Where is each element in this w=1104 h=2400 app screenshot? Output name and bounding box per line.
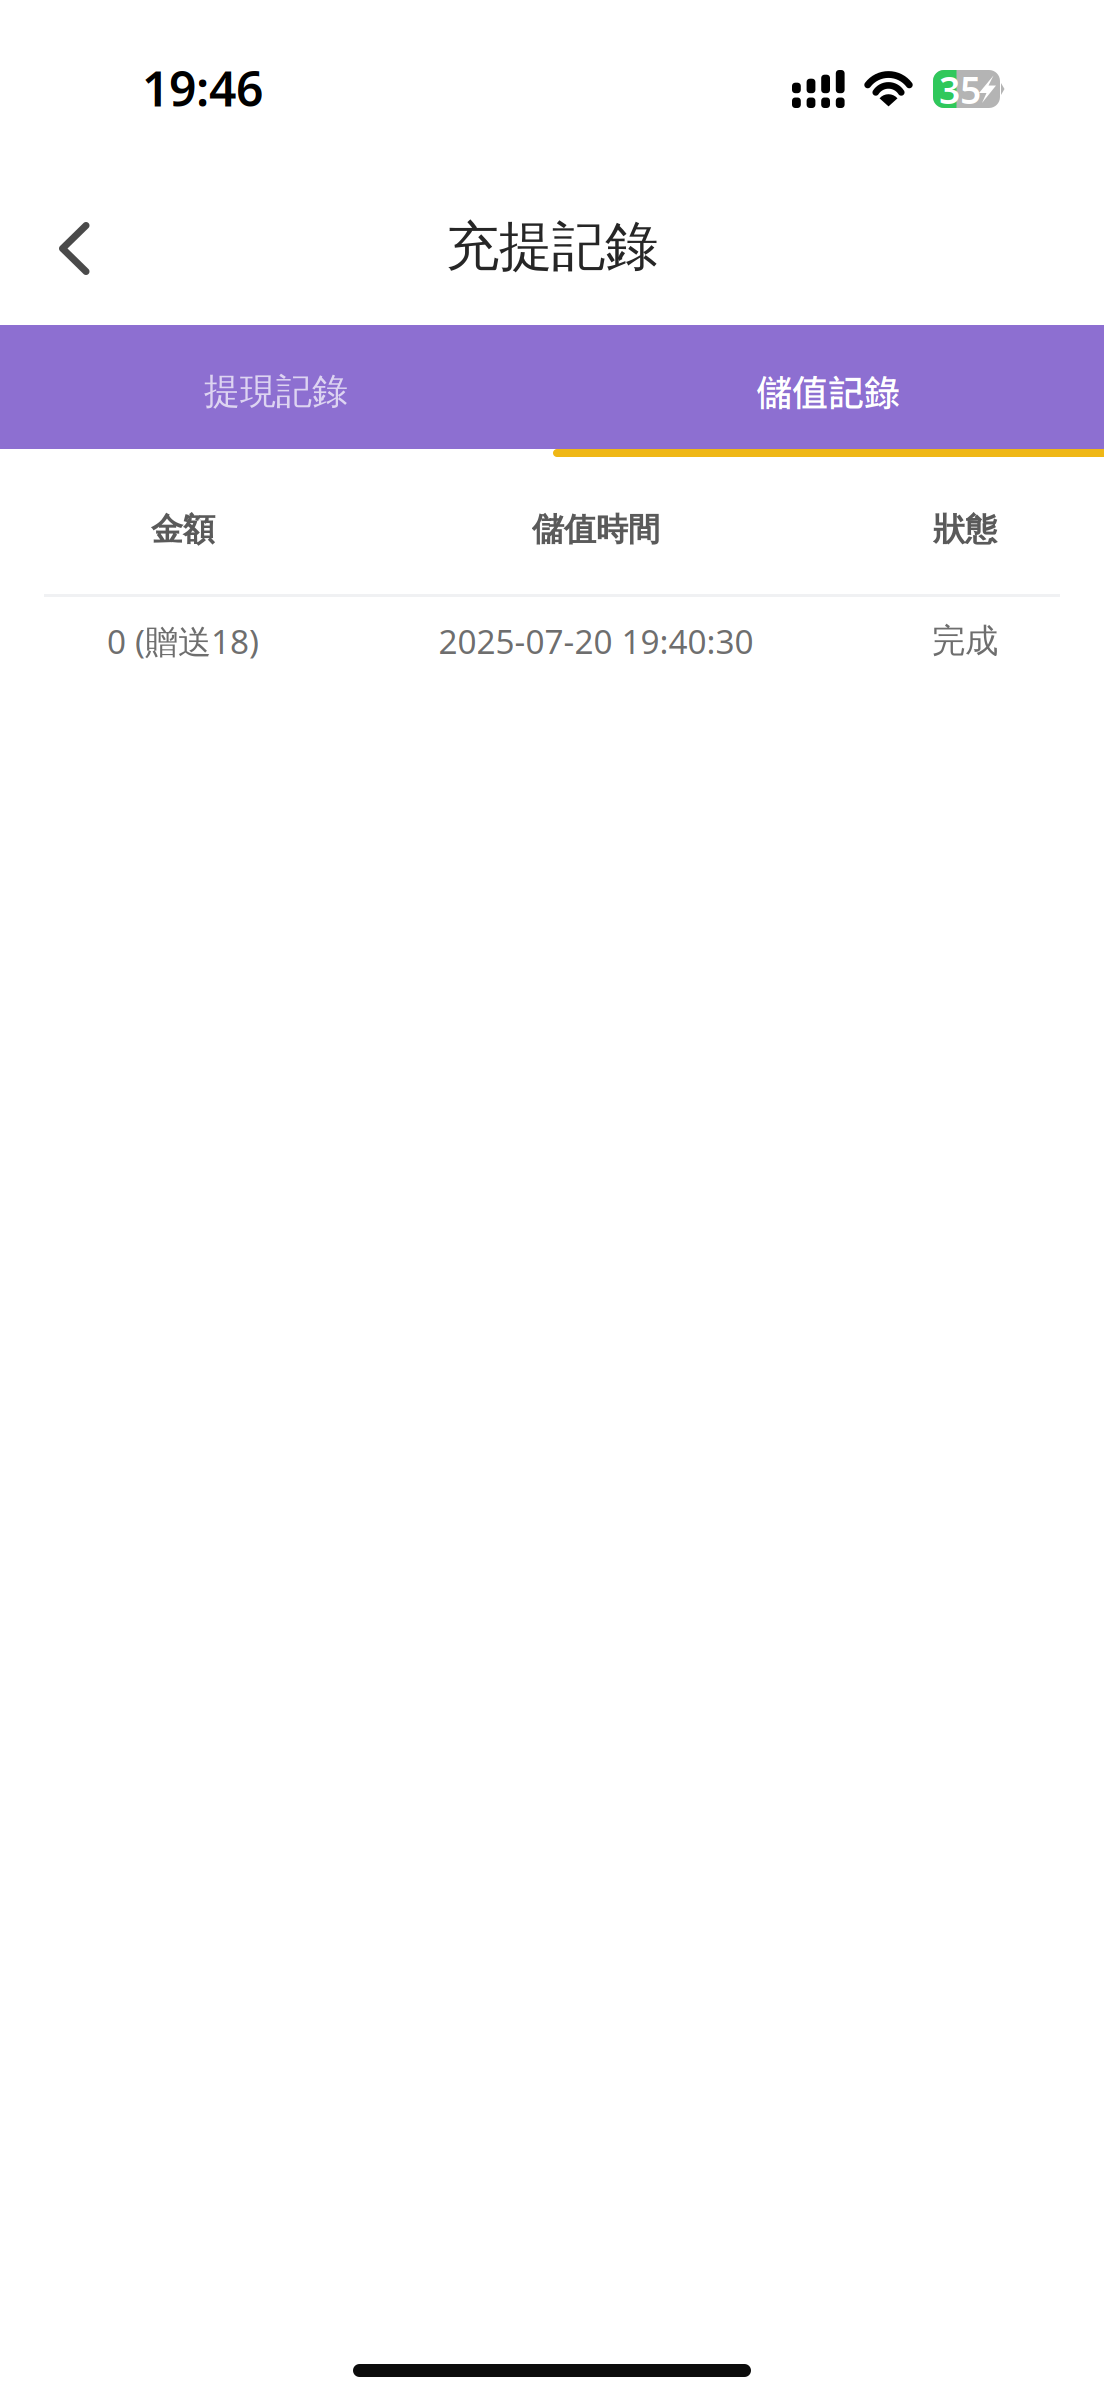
staticText: 儲值記錄 [756, 364, 900, 416]
button[interactable]: 提現記錄 [0, 325, 552, 449]
staticText: 狀態 [933, 510, 997, 549]
staticText: 金額 [151, 510, 215, 549]
staticText: 充提記錄 [446, 214, 658, 279]
button[interactable]: Back [0, 190, 140, 307]
staticText: 19:46 [142, 56, 263, 120]
staticText: 35 [939, 65, 981, 114]
button[interactable]: 儲值記錄 [552, 325, 1104, 449]
staticText: 完成 [932, 620, 998, 661]
staticText: 提現記錄 [204, 369, 348, 414]
staticText: 0 (贈送18) [107, 619, 259, 663]
staticText: 2025-07-20 19:40:30 [438, 619, 753, 663]
staticText: 儲值時間 [532, 510, 660, 549]
